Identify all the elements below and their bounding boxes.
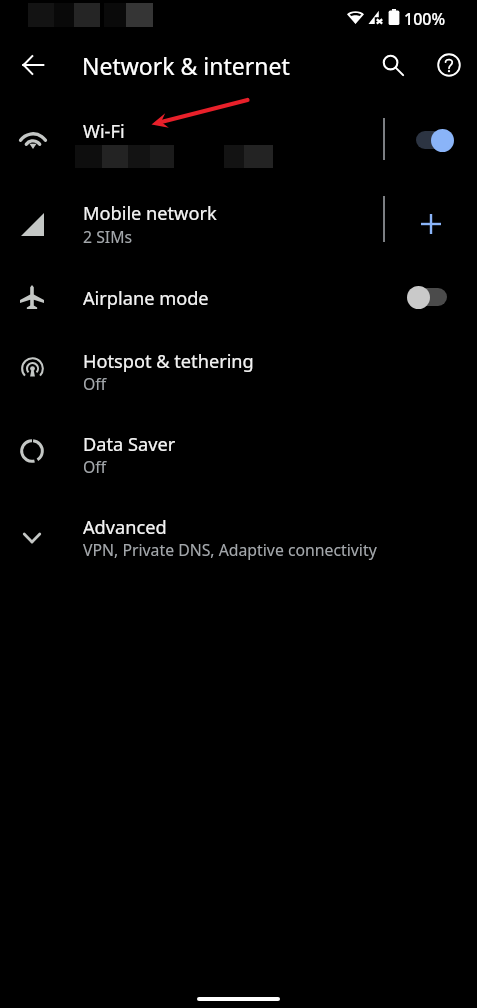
staticText: VPN, Private DNS, Adaptive connectivity bbox=[83, 539, 377, 561]
staticText: Mobile network bbox=[83, 201, 217, 226]
button[interactable]: Help bbox=[426, 42, 472, 88]
button[interactable]: Data Saver bbox=[0, 416, 477, 488]
staticText: Advanced bbox=[83, 515, 167, 540]
staticText: Data Saver bbox=[83, 432, 176, 457]
staticText: Network & internet bbox=[82, 50, 290, 81]
button[interactable]: Advanced bbox=[0, 500, 477, 572]
staticText: Wi-Fi bbox=[83, 119, 125, 144]
staticText: Off bbox=[83, 456, 107, 478]
button[interactable]: Toggle airplane mode bbox=[406, 269, 466, 325]
button[interactable]: Mobile network bbox=[0, 182, 477, 256]
button[interactable]: Turn off Wi-Fi bbox=[406, 112, 466, 168]
button[interactable]: Hotspot & tethering bbox=[0, 334, 477, 406]
staticText: Airplane mode bbox=[83, 286, 209, 311]
button[interactable]: Back bbox=[10, 42, 56, 88]
staticText: Off bbox=[83, 373, 107, 395]
staticText: Hotspot & tethering bbox=[83, 349, 254, 374]
staticText: 2 SIMs bbox=[83, 226, 133, 248]
button[interactable]: Add a mobile network bbox=[406, 196, 466, 252]
staticText: 100% bbox=[404, 8, 446, 30]
button[interactable]: Airplane mode bbox=[0, 262, 477, 332]
button[interactable]: Search bbox=[370, 42, 416, 88]
button[interactable]: Wi-Fi bbox=[0, 96, 477, 180]
